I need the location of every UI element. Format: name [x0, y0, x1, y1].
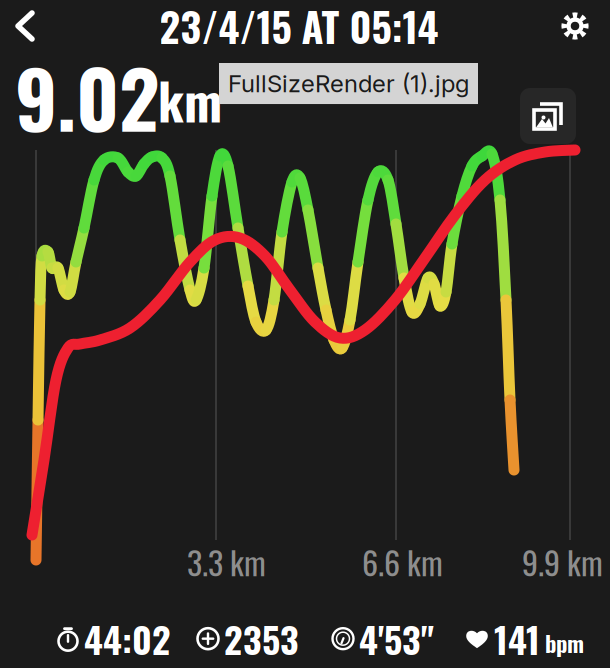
button[interactable]: Back [0, 1, 38, 51]
staticText: FullSizeRender (1).jpg [228, 69, 469, 98]
staticText: 2353 [224, 612, 299, 665]
staticText: 3.3 km [187, 538, 266, 585]
staticText: 9.9 km [522, 538, 603, 585]
staticText: km [158, 62, 222, 137]
staticText: 6.6 km [362, 538, 443, 585]
staticText: 44:02 [84, 612, 171, 665]
button[interactable]: Photos [520, 88, 576, 144]
staticText: 141 [494, 612, 540, 665]
button[interactable]: Settings [560, 3, 610, 49]
staticText: 23/4/15 AT 05:14 [159, 0, 438, 56]
staticText: 4'53" [359, 612, 434, 665]
staticText: 9.02 [15, 38, 159, 155]
staticText: bpm [545, 626, 584, 659]
